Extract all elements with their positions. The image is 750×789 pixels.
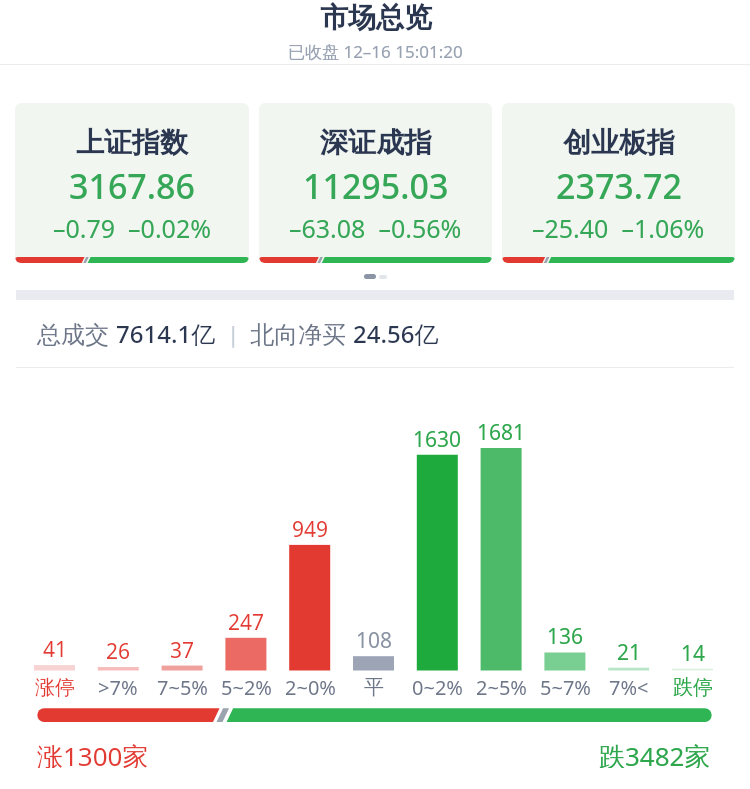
staticText: 26 xyxy=(106,637,131,666)
staticText: >7% xyxy=(98,674,138,701)
staticText: 5~7% xyxy=(540,674,591,701)
staticText: 11295.03 xyxy=(303,163,449,209)
button[interactable]: 7%< xyxy=(589,672,669,703)
staticText: 深证成指 xyxy=(320,125,432,160)
button[interactable]: 5~7% xyxy=(525,672,605,703)
button[interactable]: >7% xyxy=(78,672,158,703)
button[interactable]: 上证指数 xyxy=(15,103,249,263)
staticText: 7614.1亿 xyxy=(116,317,216,350)
staticText: 已收盘 12–16 15:01:20 xyxy=(288,40,463,63)
button[interactable]: 跌停 xyxy=(653,672,733,703)
staticText: 市场总览 xyxy=(320,0,432,35)
staticText: 5~2% xyxy=(221,674,272,701)
button[interactable]: 2~5% xyxy=(461,672,541,703)
button[interactable]: 涨停 xyxy=(15,672,95,703)
staticText: 2~5% xyxy=(476,674,527,701)
staticText: 2373.72 xyxy=(556,163,682,209)
staticText: 0~2% xyxy=(412,674,463,701)
staticText: 949 xyxy=(292,515,329,544)
staticText: 涨停 xyxy=(35,675,75,700)
staticText: 上证指数 xyxy=(76,125,188,160)
staticText: 21 xyxy=(617,638,642,667)
staticText: 247 xyxy=(228,608,265,637)
button[interactable]: 平 xyxy=(334,672,414,703)
button[interactable]: 2~0% xyxy=(270,672,350,703)
button[interactable]: 7~5% xyxy=(142,672,222,703)
staticText: 24.56亿 xyxy=(353,317,439,350)
staticText: 总成交 xyxy=(37,317,116,350)
staticText: 跌停 xyxy=(673,675,713,700)
staticText: 37 xyxy=(170,636,195,665)
button[interactable]: 深证成指 xyxy=(259,103,492,263)
staticText: 3167.86 xyxy=(69,163,195,209)
staticText: 7~5% xyxy=(157,674,208,701)
staticText: 北向净买 xyxy=(250,317,353,350)
staticText: 136 xyxy=(547,622,584,651)
staticText: 2~0% xyxy=(285,674,336,701)
staticText: 涨1300家 xyxy=(37,738,149,768)
staticText: 1630 xyxy=(413,425,462,454)
button[interactable]: 5~2% xyxy=(206,672,286,703)
staticText: –25.40 –1.06% xyxy=(532,211,705,243)
staticText: 7%< xyxy=(609,674,649,701)
staticText: –0.79 –0.02% xyxy=(53,211,211,243)
button[interactable]: 总成交 xyxy=(0,300,750,367)
staticText: 跌3482家 xyxy=(599,738,711,768)
staticText: ∣ xyxy=(216,319,250,349)
staticText: –63.08 –0.56% xyxy=(289,211,462,243)
staticText: 14 xyxy=(681,639,706,668)
staticText: 创业板指 xyxy=(563,125,675,160)
staticText: 平 xyxy=(364,675,384,700)
button[interactable]: 创业板指 xyxy=(502,103,735,263)
staticText: 1681 xyxy=(477,418,526,447)
button[interactable]: 0~2% xyxy=(397,672,477,703)
staticText: 108 xyxy=(356,626,393,655)
staticText: 41 xyxy=(43,635,68,664)
